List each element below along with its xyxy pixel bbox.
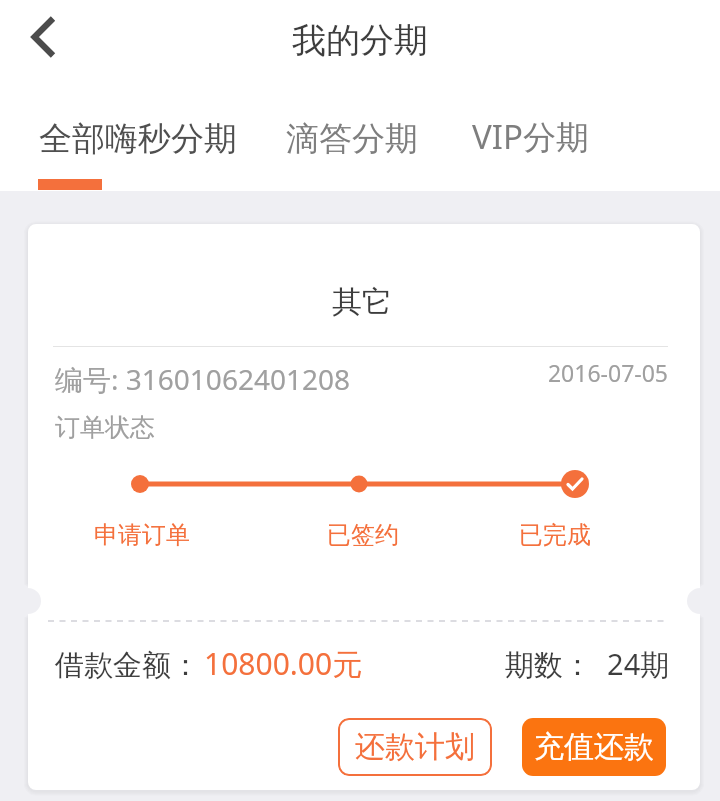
staticText: 10800.00元 [204,643,363,684]
staticText: 还款计划 [355,728,475,766]
staticText: 我的分期 [292,19,428,62]
button[interactable]: 充值还款 [522,718,666,776]
staticText: 滴答分期 [286,118,418,160]
button[interactable]: 全部嗨秒分期 [25,103,223,191]
staticText: VIP分期 [472,114,589,159]
staticText: 编号: 31601062401208 [55,360,351,398]
staticText: 已签约 [327,520,399,550]
staticText: 申请订单 [94,520,190,550]
button[interactable]: 滴答分期 [272,103,404,191]
staticText: 期数： 24期 [505,644,670,684]
staticText: 2016-07-05 [452,357,668,388]
staticText: 其它 [26,283,698,321]
staticText: 已完成 [519,520,591,550]
staticText: 借款金额： [55,647,200,684]
button[interactable]: Back [7,1,79,73]
staticText: 订单状态 [55,412,155,443]
staticText: 充值还款 [534,728,654,766]
button[interactable]: 还款计划 [338,718,492,776]
button[interactable]: VIP分期 [458,103,575,191]
staticText: 全部嗨秒分期 [39,118,237,160]
